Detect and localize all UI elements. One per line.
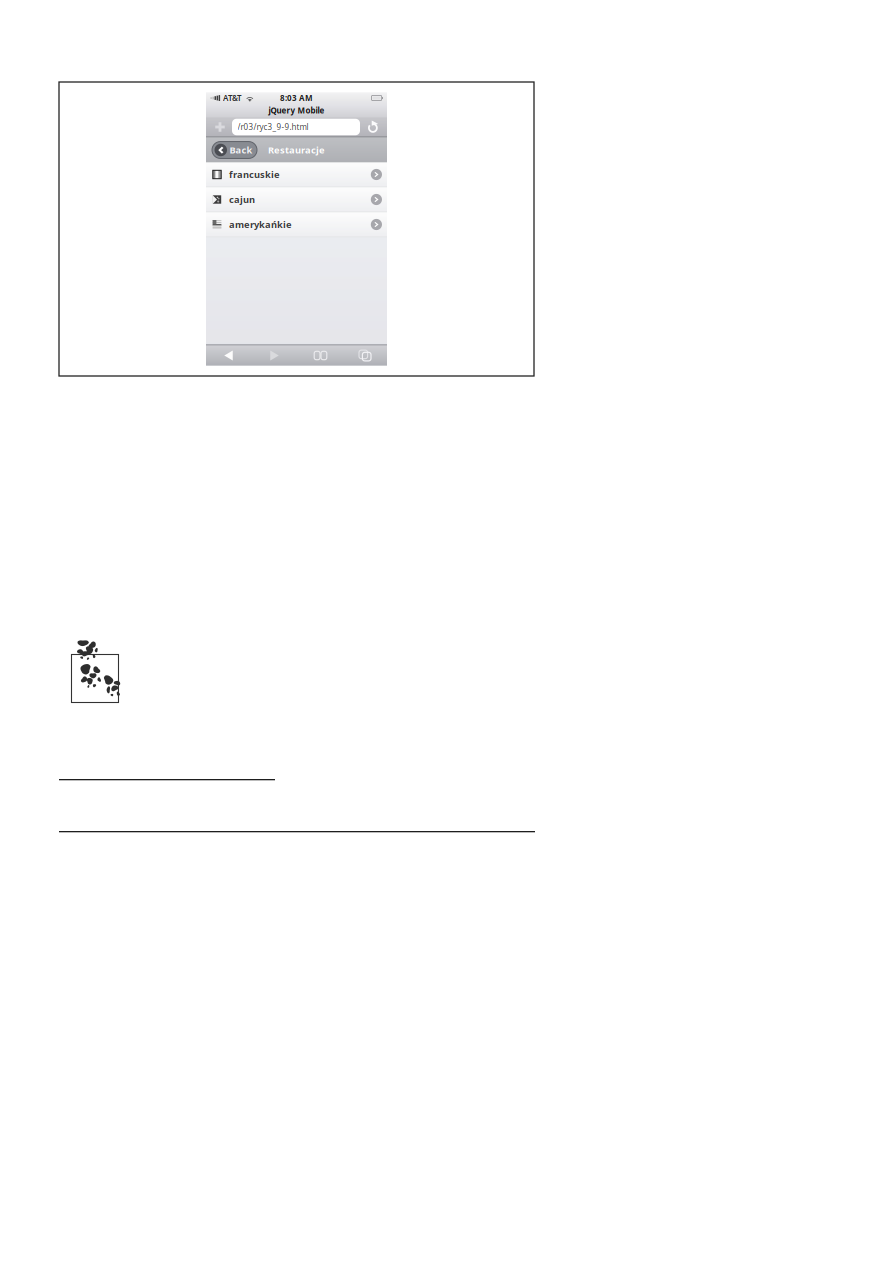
staticText: 8:03 AM (280, 93, 313, 103)
button[interactable]: cajun (206, 187, 387, 211)
staticText: francuskie (229, 168, 280, 181)
staticText: Restauracje (268, 144, 325, 156)
button[interactable]: Reload (360, 117, 386, 136)
button[interactable]: Back (206, 345, 251, 365)
button[interactable]: Add bookmark (208, 117, 232, 136)
staticText: Back (229, 144, 252, 156)
staticText: cajun (229, 193, 255, 206)
button[interactable]: Bookmarks (298, 345, 343, 365)
button[interactable]: Forward (251, 345, 298, 365)
button[interactable]: Back (212, 142, 257, 158)
staticText: amerykańkie (229, 218, 292, 231)
button[interactable]: Tabs (343, 345, 387, 365)
staticText: jQuery Mobile (268, 105, 324, 116)
staticText: /r03/ryc3_9-9.html (237, 122, 308, 132)
button[interactable]: amerykańkie (206, 212, 387, 236)
button[interactable]: francuskie (206, 162, 387, 186)
staticText: AT&T (223, 93, 242, 103)
